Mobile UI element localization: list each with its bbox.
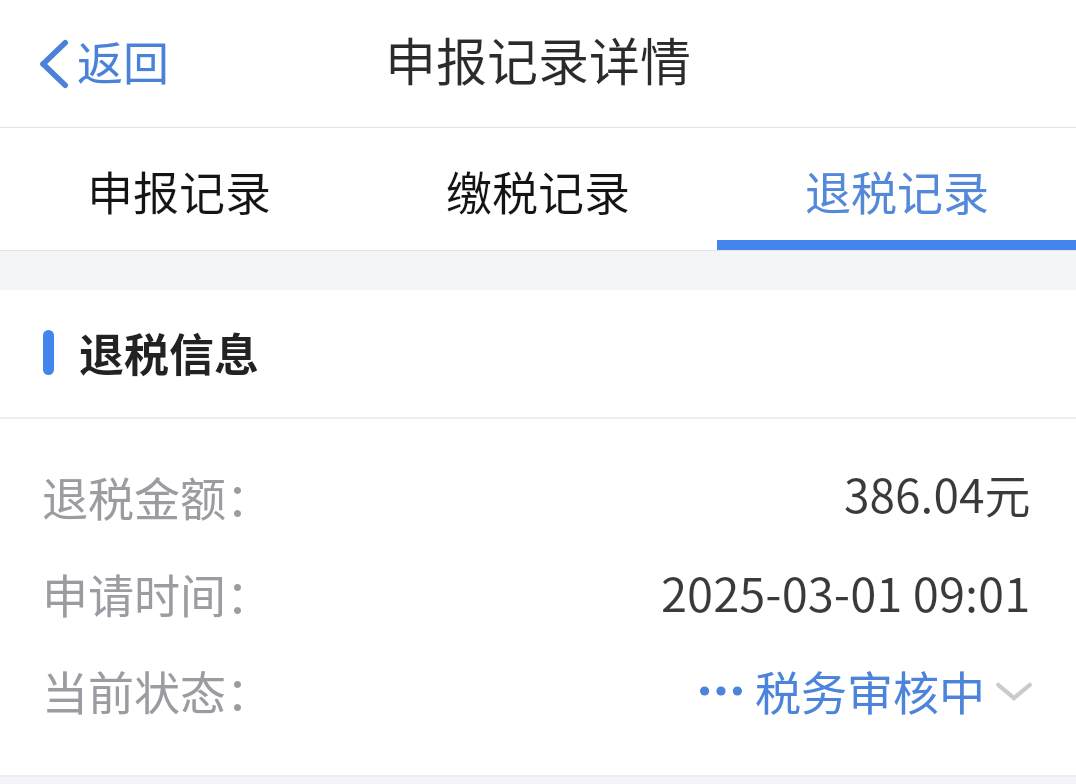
button[interactable]: 申请时间： [0, 550, 1076, 647]
staticText: 税务审核中 [755, 657, 985, 724]
staticText: 386.04元 [844, 460, 1031, 527]
button[interactable]: 缴税记录 [358, 128, 717, 250]
staticText: 缴税记录 [446, 157, 630, 224]
staticText: 申请时间： [42, 560, 272, 627]
staticText: 退税金额： [42, 463, 272, 530]
staticText: 当前状态： [42, 657, 272, 724]
button[interactable]: 退税记录 [717, 128, 1076, 250]
staticText: 退税信息 [79, 320, 260, 385]
staticText: 申报记录 [87, 157, 271, 224]
staticText: 退税记录 [805, 157, 989, 224]
button[interactable]: 退税金额： [0, 453, 1076, 550]
other: 展开进度详情 [996, 681, 1036, 702]
other: 返回上一页 [40, 40, 68, 88]
button[interactable]: 申报记录 [0, 128, 358, 250]
staticText: 返回 [77, 27, 169, 94]
staticText: 申报记录详情 [385, 22, 692, 96]
button[interactable]: 当前状态： [0, 647, 1076, 744]
button[interactable]: 返回上一页 [30, 22, 179, 105]
staticText: 2025-03-01 09:01 [661, 557, 1031, 625]
button[interactable]: 税务审核中 [700, 657, 1036, 724]
